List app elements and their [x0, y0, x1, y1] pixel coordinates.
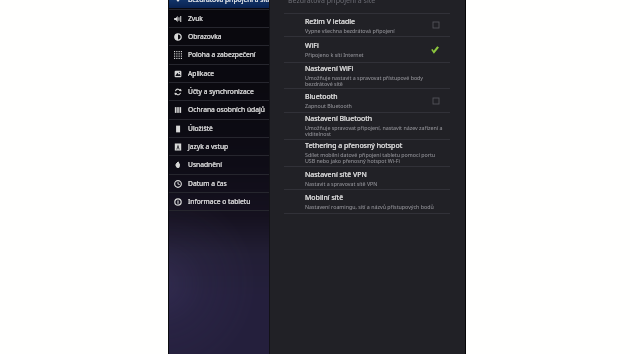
staticText: Jazyk a vstup	[188, 142, 229, 151]
staticText: Nastavení sítě VPN	[305, 170, 367, 180]
staticText: Ochrana osobních údajů	[188, 105, 265, 114]
staticText: Režim V letadle	[305, 17, 355, 27]
staticText: Sdílet mobilní datové připojení tabletu …	[305, 151, 444, 165]
staticText: Nastavit a spravovat sítě VPN	[305, 180, 378, 187]
button[interactable]: Aplikace	[169, 65, 269, 82]
button[interactable]: Tethering a přenosný hotspot	[270, 140, 465, 166]
staticText: Připojeno k síti Internet	[305, 51, 364, 58]
staticText: Nastavení WiFi	[305, 64, 354, 74]
button[interactable]: Nastavení WiFi	[270, 63, 465, 88]
staticText: Aplikace	[188, 69, 215, 78]
staticText: Usnadnění	[188, 160, 222, 169]
staticText: Zvuk	[188, 14, 203, 23]
staticText: Umožňuje nastavit a spravovat přístupové…	[305, 74, 444, 88]
button[interactable]: Zvuk	[169, 10, 269, 27]
button[interactable]: Bluetooth	[270, 89, 465, 112]
button[interactable]: Nastavení Bluetooth	[270, 113, 465, 139]
button[interactable]: Úložiště	[169, 120, 269, 137]
button[interactable]: Ochrana osobních údajů	[169, 101, 269, 118]
staticText: Informace o tabletu	[188, 197, 251, 206]
staticText: WiFi	[305, 41, 319, 51]
staticText: Úložiště	[188, 124, 213, 133]
staticText: Mobilní sítě	[305, 193, 344, 203]
button[interactable]: Bezdrátová připojení a sítě	[169, 0, 269, 8]
staticText: Bezdrátová připojení a sítě	[288, 0, 376, 6]
staticText: Umožňuje spravovat připojení, nastavit n…	[305, 124, 444, 138]
button[interactable]: Nastavení sítě VPN	[270, 167, 465, 189]
staticText: Nastavení roamingu, sítí a názvů přístup…	[305, 203, 434, 210]
button[interactable]: Informace o tabletu	[169, 193, 269, 210]
staticText: Vypne všechna bezdrátová připojení	[305, 27, 395, 34]
staticText: Bluetooth	[305, 92, 338, 102]
staticText: Zapnout Bluetooth	[305, 102, 352, 109]
staticText: Obrazovka	[188, 32, 222, 41]
button[interactable]: Jazyk a vstup	[169, 138, 269, 155]
button[interactable]: Obrazovka	[169, 28, 269, 45]
button[interactable]: Usnadnění	[169, 156, 269, 173]
staticText: Poloha a zabezpečení	[188, 50, 256, 59]
button[interactable]: Datum a čas	[169, 175, 269, 192]
button[interactable]: Poloha a zabezpečení	[169, 46, 269, 63]
staticText: Datum a čas	[188, 179, 227, 188]
button[interactable]: Režim V letadle	[270, 14, 465, 36]
button[interactable]: Účty a synchronizace	[169, 83, 269, 100]
staticText: Bezdrátová připojení a sítě	[188, 0, 269, 4]
button[interactable]: WiFi	[270, 37, 465, 62]
staticText: Nastavení Bluetooth	[305, 114, 372, 124]
staticText: Účty a synchronizace	[188, 87, 254, 96]
button[interactable]: Mobilní sítě	[270, 190, 465, 213]
staticText: Tethering a přenosný hotspot	[305, 141, 403, 151]
